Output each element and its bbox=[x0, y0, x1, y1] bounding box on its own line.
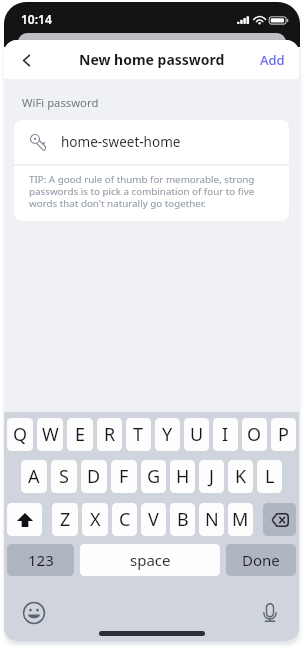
button[interactable]: Shift bbox=[7, 503, 42, 536]
button[interactable]: J bbox=[199, 460, 224, 493]
button[interactable]: O bbox=[242, 418, 267, 451]
staticText: Q bbox=[13, 422, 28, 447]
staticText: New home password bbox=[79, 50, 225, 69]
button[interactable]: E bbox=[67, 418, 93, 451]
staticText: WiFi password bbox=[22, 95, 99, 110]
staticText: C bbox=[119, 507, 131, 532]
staticText: I bbox=[222, 422, 229, 447]
button[interactable]: A bbox=[21, 460, 47, 493]
staticText: N bbox=[205, 507, 219, 532]
button[interactable]: 123 bbox=[7, 544, 74, 576]
staticText: O bbox=[247, 422, 262, 447]
button[interactable]: space bbox=[80, 544, 220, 576]
staticText: L bbox=[265, 464, 275, 489]
button[interactable]: K bbox=[228, 460, 253, 493]
staticText: U bbox=[190, 422, 204, 447]
staticText: S bbox=[59, 464, 69, 489]
button[interactable]: Back bbox=[12, 46, 40, 74]
button[interactable]: Add bbox=[246, 43, 299, 77]
staticText: K bbox=[235, 464, 247, 489]
button[interactable]: M bbox=[228, 503, 253, 536]
staticText: Z bbox=[60, 507, 71, 532]
staticText: home-sweet-home bbox=[61, 133, 181, 151]
staticText: H bbox=[176, 464, 190, 489]
button[interactable]: N bbox=[199, 503, 224, 536]
staticText: E bbox=[75, 422, 86, 447]
staticText: X bbox=[90, 507, 101, 532]
button[interactable]: X bbox=[82, 503, 108, 536]
staticText: Y bbox=[162, 422, 173, 447]
button[interactable]: F bbox=[111, 460, 137, 493]
staticText: V bbox=[148, 507, 159, 532]
button[interactable]: Backspace bbox=[263, 503, 296, 536]
staticText: R bbox=[104, 422, 116, 447]
button[interactable]: Q bbox=[7, 418, 33, 451]
button[interactable]: Z bbox=[52, 503, 78, 536]
button[interactable]: L bbox=[257, 460, 282, 493]
staticText: Done bbox=[242, 550, 280, 570]
button[interactable]: R bbox=[97, 418, 122, 451]
button[interactable]: Dictation bbox=[258, 601, 282, 625]
staticText: J bbox=[209, 464, 214, 489]
staticText: F bbox=[119, 464, 129, 489]
staticText: space bbox=[130, 550, 171, 570]
button[interactable]: B bbox=[170, 503, 195, 536]
button[interactable]: T bbox=[126, 418, 151, 451]
staticText: B bbox=[177, 507, 189, 532]
button[interactable]: W bbox=[37, 418, 63, 451]
staticText: G bbox=[147, 464, 161, 489]
staticText: A bbox=[28, 464, 40, 489]
button[interactable]: C bbox=[112, 503, 137, 536]
button[interactable]: Y bbox=[155, 418, 180, 451]
staticText: P bbox=[278, 422, 289, 447]
button[interactable]: Emoji keyboard bbox=[22, 601, 46, 625]
button[interactable]: U bbox=[184, 418, 209, 451]
button[interactable]: G bbox=[141, 460, 166, 493]
staticText: Add bbox=[260, 51, 285, 69]
staticText: T bbox=[133, 422, 144, 447]
button[interactable]: H bbox=[170, 460, 195, 493]
button[interactable]: P bbox=[271, 418, 296, 451]
staticText: TIP: A good rule of thumb for memorable,… bbox=[29, 173, 277, 210]
button[interactable]: V bbox=[141, 503, 166, 536]
staticText: 10:14 bbox=[21, 11, 52, 27]
staticText: W bbox=[42, 422, 59, 447]
staticText: 123 bbox=[28, 550, 54, 570]
button[interactable]: S bbox=[51, 460, 77, 493]
button[interactable]: I bbox=[213, 418, 238, 451]
staticText: M bbox=[232, 507, 249, 532]
button[interactable]: Done bbox=[226, 544, 296, 576]
staticText: D bbox=[87, 464, 101, 489]
button[interactable]: D bbox=[81, 460, 107, 493]
